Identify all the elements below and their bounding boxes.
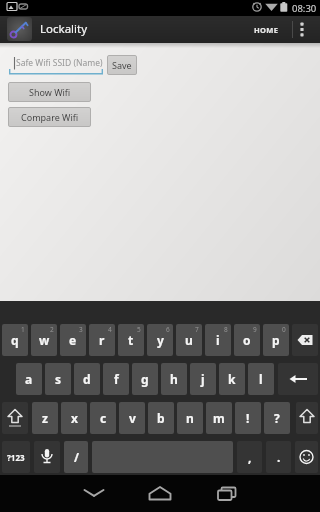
button[interactable]: r xyxy=(89,324,115,356)
button[interactable] xyxy=(278,363,318,395)
staticText: 8 xyxy=(224,325,228,334)
staticText: e xyxy=(69,332,77,348)
button[interactable]: b xyxy=(148,402,174,434)
button[interactable]: f xyxy=(103,363,129,395)
staticText: v xyxy=(129,410,136,426)
staticText: 08:30 xyxy=(292,2,317,15)
staticText: k xyxy=(228,371,236,387)
button[interactable]: o xyxy=(234,324,260,356)
staticText: Compare Wifi xyxy=(21,111,79,123)
staticText: 1 xyxy=(21,325,25,334)
button[interactable]: ?123 xyxy=(2,441,30,473)
staticText: HOME xyxy=(254,25,279,35)
button[interactable]: z xyxy=(32,402,58,434)
staticText: h xyxy=(170,371,178,387)
staticText: ! xyxy=(246,410,250,426)
button[interactable]: e xyxy=(60,324,86,356)
staticText: 5 xyxy=(137,325,141,334)
button[interactable] xyxy=(74,475,114,512)
button[interactable]: x xyxy=(61,402,87,434)
staticText: x xyxy=(71,410,78,426)
button[interactable]: j xyxy=(190,363,216,395)
staticText: s xyxy=(55,371,62,387)
staticText: , xyxy=(248,449,252,465)
staticText: / xyxy=(74,449,79,465)
staticText: Show Wifi xyxy=(29,86,71,98)
staticText: 4 xyxy=(108,325,112,334)
button[interactable] xyxy=(140,475,180,512)
staticText: z xyxy=(42,410,48,426)
button[interactable]: d xyxy=(74,363,100,395)
staticText: 2 xyxy=(50,325,54,334)
button[interactable]: y xyxy=(147,324,173,356)
staticText: o xyxy=(243,332,251,348)
staticText: g xyxy=(141,371,149,387)
staticText: a xyxy=(25,371,33,387)
staticText: 9 xyxy=(253,325,257,334)
button[interactable] xyxy=(296,402,318,434)
button[interactable]: v xyxy=(119,402,145,434)
button[interactable]: k xyxy=(219,363,245,395)
button[interactable]: Compare Wifi xyxy=(8,107,91,127)
button[interactable]: l xyxy=(248,363,274,395)
button[interactable]: i xyxy=(205,324,231,356)
button[interactable] xyxy=(2,402,28,434)
button[interactable]: g xyxy=(132,363,158,395)
staticText: j xyxy=(201,371,205,387)
staticText: ? xyxy=(274,410,280,426)
staticText: r xyxy=(99,332,105,348)
staticText: p xyxy=(272,332,280,348)
staticText: u xyxy=(185,332,193,348)
button[interactable]: s xyxy=(45,363,71,395)
staticText: i xyxy=(216,332,220,348)
staticText: q xyxy=(11,332,19,348)
button[interactable]: t xyxy=(118,324,144,356)
button[interactable] xyxy=(295,441,318,473)
staticText: 0 xyxy=(282,325,286,334)
button[interactable]: p xyxy=(263,324,289,356)
staticText: . xyxy=(277,449,281,465)
button[interactable]: . xyxy=(266,441,291,473)
button[interactable]: h xyxy=(161,363,187,395)
button[interactable] xyxy=(207,475,247,512)
staticText: d xyxy=(83,371,91,387)
staticText: 7 xyxy=(195,325,199,334)
button[interactable] xyxy=(7,17,32,41)
staticText: w xyxy=(39,332,50,348)
button[interactable]: , xyxy=(237,441,262,473)
staticText: c xyxy=(100,410,107,426)
staticText: 3 xyxy=(79,325,83,334)
staticText: f xyxy=(114,371,119,387)
button[interactable]: n xyxy=(177,402,203,434)
button[interactable]: Save xyxy=(107,55,137,75)
staticText: ?123 xyxy=(7,452,25,463)
button[interactable] xyxy=(292,324,318,356)
button[interactable]: ! xyxy=(235,402,261,434)
button[interactable]: q xyxy=(2,324,28,356)
button[interactable]: m xyxy=(206,402,232,434)
button[interactable]: ? xyxy=(264,402,290,434)
staticText: l xyxy=(259,371,263,387)
button[interactable]: a xyxy=(16,363,42,395)
staticText: t xyxy=(128,332,134,348)
button[interactable] xyxy=(34,441,60,473)
button[interactable] xyxy=(295,16,309,43)
button[interactable]: w xyxy=(31,324,57,356)
staticText: m xyxy=(213,410,225,426)
staticText: y xyxy=(157,332,164,348)
staticText: Safe Wifi SSID (Name) xyxy=(16,57,103,69)
button[interactable]: / xyxy=(64,441,88,473)
button[interactable]: c xyxy=(90,402,116,434)
button[interactable]: HOME xyxy=(246,16,286,43)
staticText: Lockality xyxy=(40,21,88,37)
staticText: Save xyxy=(112,59,132,71)
staticText: b xyxy=(157,410,165,426)
button[interactable]: u xyxy=(176,324,202,356)
staticText: n xyxy=(186,410,194,426)
button[interactable]: Show Wifi xyxy=(8,82,91,102)
staticText: 6 xyxy=(166,325,170,334)
button[interactable]: Safe Wifi SSID (Name) xyxy=(9,53,103,75)
